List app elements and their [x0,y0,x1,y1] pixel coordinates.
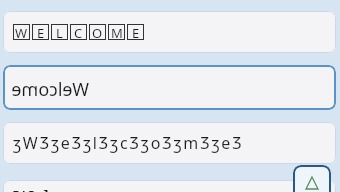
staticText: Welcome [13,184,101,192]
button[interactable]: Play [293,165,331,192]
staticText: M [111,24,123,40]
staticText: C [74,24,83,40]
staticText: E [132,24,140,40]
staticText: Welcome [11,77,89,102]
button[interactable]: W [3,11,336,53]
button[interactable]: Welcome [3,180,336,192]
staticText: ʒWƷʒeƷʒlƷʒcƷʒoƷʒmƷʒeƷ [13,132,244,154]
staticText: W [15,24,28,40]
staticText: O [92,24,103,40]
staticText: L [56,24,63,40]
button[interactable]: ʒWƷʒeƷʒlƷʒcƷʒoƷʒmƷʒeƷ [3,122,336,164]
staticText: E [37,24,45,40]
button[interactable]: Welcome [3,65,336,110]
